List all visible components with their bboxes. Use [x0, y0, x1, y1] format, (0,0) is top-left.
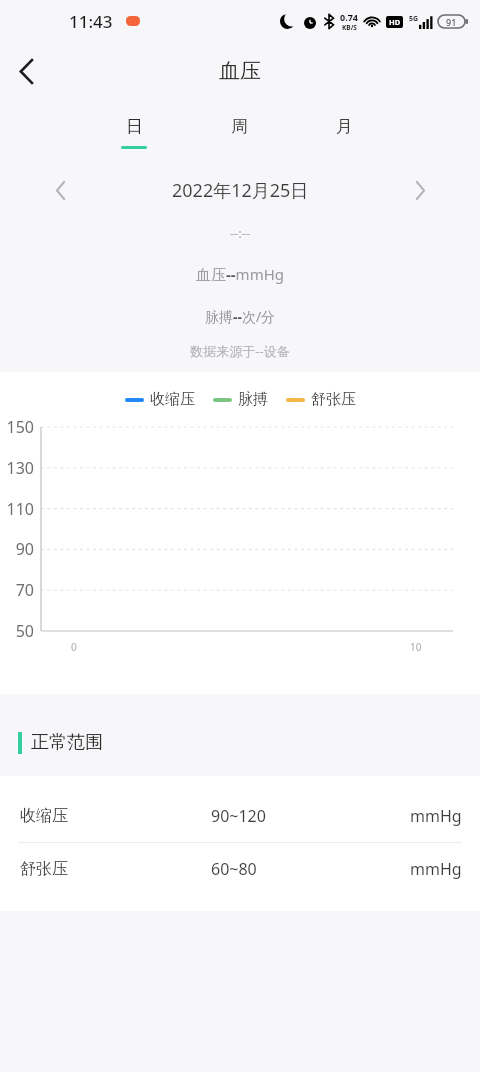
button[interactable]: Previous day — [38, 170, 82, 210]
staticText: 2022年12月25日 — [172, 178, 309, 203]
staticText: 11:43 — [69, 10, 113, 33]
staticText: 月 — [336, 116, 353, 137]
staticText: 0 — [71, 640, 77, 654]
button[interactable]: Next day — [398, 170, 442, 210]
staticText: 血压 — [219, 58, 261, 84]
staticText: 5G — [409, 14, 419, 24]
staticText: 50 — [0, 620, 34, 642]
staticText: 脉搏--次/分 — [0, 307, 480, 326]
staticText: 收缩压 — [20, 806, 68, 826]
staticText: mmHg — [410, 805, 462, 827]
staticText: 130 — [0, 457, 34, 479]
button[interactable]: 周 — [204, 116, 274, 146]
staticText: 70 — [0, 579, 34, 601]
staticText: 110 — [0, 498, 34, 520]
staticText: 血压--mmHg — [0, 264, 480, 284]
staticText: 90 — [0, 538, 34, 560]
staticText: 91 — [446, 16, 457, 28]
staticText: mmHg — [410, 858, 462, 880]
staticText: 日 — [126, 116, 143, 137]
staticText: 150 — [0, 416, 34, 438]
button[interactable]: 收缩压 — [0, 790, 480, 842]
staticText: 收缩压 — [150, 390, 195, 409]
staticText: 90~120 — [211, 805, 266, 827]
staticText: 0.74 — [340, 11, 358, 23]
button[interactable]: 月 — [309, 116, 379, 146]
button[interactable]: 舒张压 — [0, 843, 480, 895]
staticText: 正常范围 — [31, 731, 103, 754]
staticText: 舒张压 — [20, 859, 68, 879]
button[interactable]: 日 — [99, 116, 169, 149]
button[interactable]: Back — [0, 45, 52, 97]
staticText: 数据来源于--设备 — [0, 342, 480, 360]
staticText: HD — [389, 17, 401, 27]
staticText: KB/S — [342, 23, 357, 32]
staticText: 60~80 — [211, 858, 257, 880]
staticText: 舒张压 — [311, 390, 356, 409]
staticText: 周 — [231, 116, 248, 137]
staticText: 10 — [410, 640, 422, 654]
staticText: 脉搏 — [238, 390, 268, 409]
